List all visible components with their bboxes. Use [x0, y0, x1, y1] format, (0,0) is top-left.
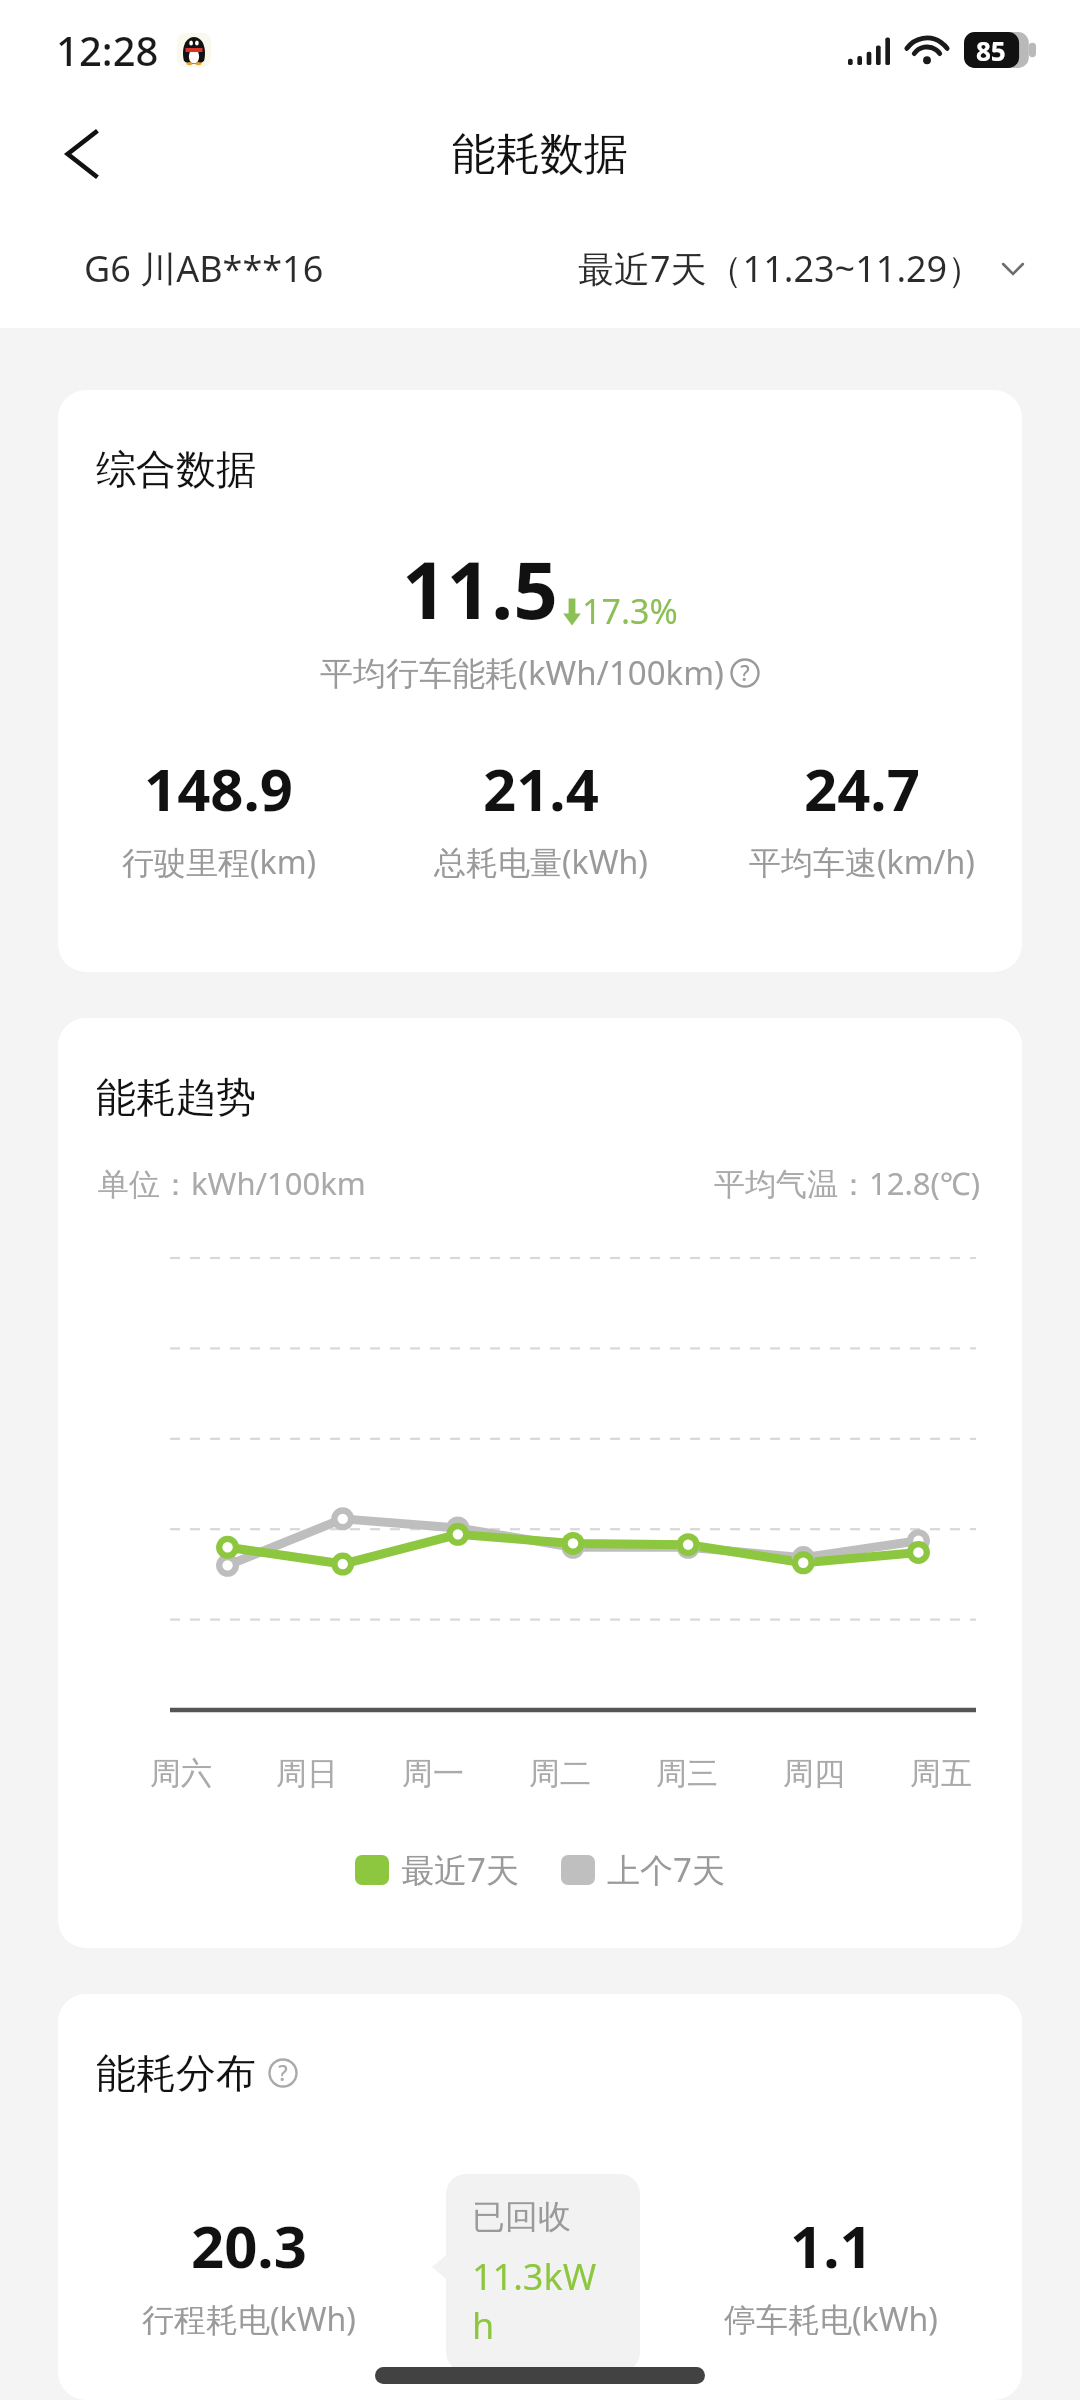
staticText: ? — [740, 659, 750, 688]
staticText: 平均行车能耗(kWh/100km) — [320, 650, 724, 695]
staticText: 最近7天 — [401, 1847, 519, 1892]
staticText: 11.3kWh — [472, 2252, 614, 2350]
staticText: 最近7天（11.23~11.29） — [578, 244, 984, 293]
staticText: 平均气温：12.8(℃) — [714, 1162, 980, 1204]
button[interactable]: 上个7天 — [561, 1847, 725, 1892]
staticText: 20.3 — [191, 2206, 307, 2285]
staticText: 17.3% — [582, 588, 678, 634]
staticText: 周六 — [150, 1754, 212, 1793]
staticText: 24.7 — [804, 749, 920, 828]
staticText: 行程耗电(kWh) — [142, 2297, 356, 2341]
staticText: 综合数据 — [96, 444, 256, 494]
button[interactable]: 最近7天（11.23~11.29） — [578, 244, 1032, 293]
button[interactable]: 已回收 — [446, 2174, 640, 2372]
staticText: 148.9 — [144, 749, 294, 828]
staticText: 总耗电量(kWh) — [434, 840, 648, 884]
staticText: 周三 — [656, 1754, 718, 1793]
staticText: 上个7天 — [607, 1847, 725, 1892]
staticText: 周五 — [910, 1754, 972, 1793]
staticText: 能耗数据 — [452, 127, 628, 182]
staticText: 单位：kWh/100km — [98, 1162, 366, 1204]
staticText: 周一 — [402, 1754, 464, 1793]
staticText: G6 川AB***16 — [84, 244, 324, 293]
staticText: 1.1 — [790, 2206, 873, 2285]
staticText: 周四 — [783, 1754, 845, 1793]
staticText: 能耗趋势 — [96, 1072, 256, 1122]
staticText: 停车耗电(kWh) — [724, 2297, 938, 2341]
staticText: 已回收 — [472, 2196, 571, 2238]
staticText: 12:28 — [56, 23, 159, 77]
staticText: 平均车速(km/h) — [749, 840, 975, 884]
staticText: 21.4 — [483, 749, 599, 828]
staticText: 11.5 — [402, 536, 558, 642]
button[interactable]: 最近7天 — [355, 1847, 519, 1892]
button[interactable]: Back — [36, 112, 120, 196]
staticText: ? — [278, 2059, 288, 2088]
staticText: 85 — [976, 33, 1006, 68]
staticText: 周二 — [529, 1754, 591, 1793]
staticText: 行驶里程(km) — [122, 840, 317, 884]
staticText: 能耗分布 — [96, 2048, 256, 2098]
staticText: 周日 — [276, 1754, 338, 1793]
